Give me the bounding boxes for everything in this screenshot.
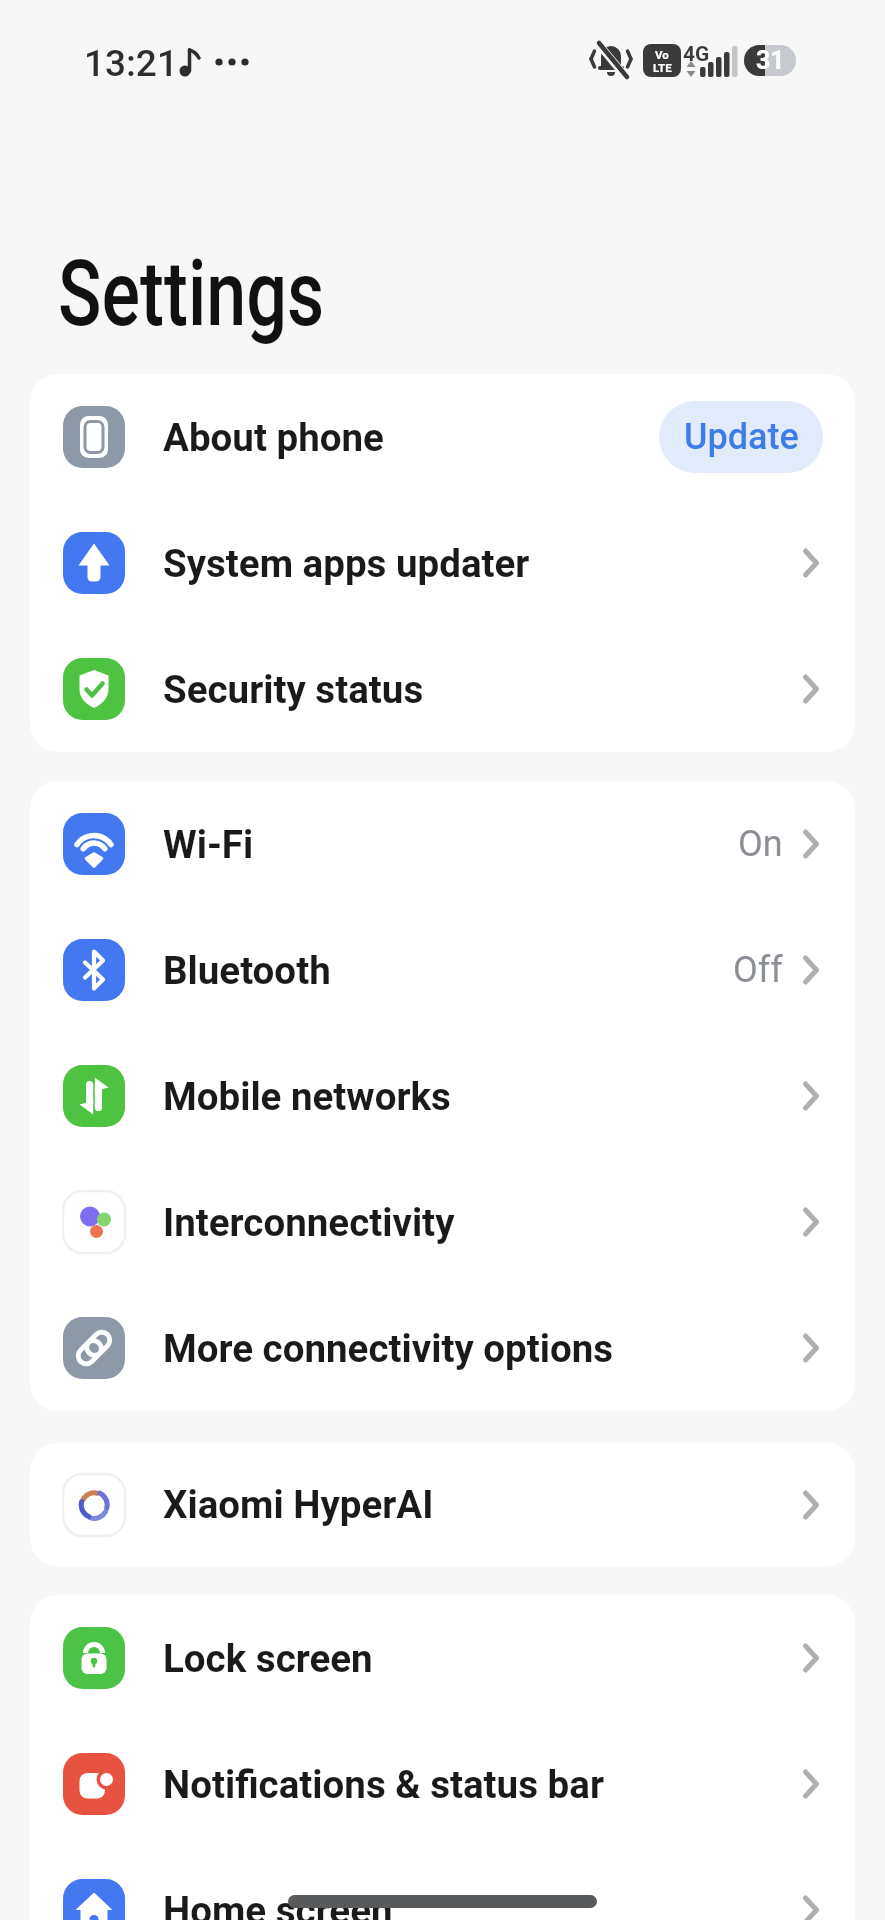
button[interactable]: Update [659, 401, 823, 473]
staticText: Xiaomi HyperAI [163, 1482, 434, 1527]
staticText: 4G [683, 42, 710, 67]
button[interactable]: Xiaomi HyperAI [30, 1443, 855, 1566]
staticText: On [738, 823, 783, 865]
staticText: Interconnectivity [163, 1200, 455, 1245]
staticText: LTE [653, 61, 672, 74]
staticText: Notifications & status bar [163, 1762, 604, 1807]
button[interactable]: About phone [30, 374, 855, 500]
staticText: More connectivity options [163, 1326, 614, 1371]
staticText: Vo [655, 48, 669, 61]
button[interactable]: Home screen [30, 1847, 855, 1920]
staticText: Off [733, 949, 783, 991]
staticText: Settings [58, 241, 324, 348]
staticText: Security status [163, 667, 424, 712]
button[interactable]: Bluetooth [30, 907, 855, 1033]
staticText: Lock screen [163, 1636, 373, 1681]
button[interactable]: Wi-Fi [30, 781, 855, 907]
button[interactable]: Mobile networks [30, 1033, 855, 1159]
button[interactable]: Interconnectivity [30, 1159, 855, 1285]
staticText: Update [684, 416, 799, 458]
staticText: 31 [756, 46, 785, 75]
staticText: System apps updater [163, 541, 530, 586]
staticText: 13:21 [84, 42, 178, 85]
button[interactable]: Lock screen [30, 1595, 855, 1721]
staticText: Mobile networks [163, 1074, 451, 1119]
staticText: Bluetooth [163, 948, 331, 993]
button[interactable]: System apps updater [30, 500, 855, 626]
staticText: Home screen [163, 1888, 393, 1920]
button[interactable]: More connectivity options [30, 1285, 855, 1411]
staticText: About phone [163, 415, 384, 460]
staticText: Wi-Fi [163, 822, 254, 867]
button[interactable]: Security status [30, 626, 855, 752]
button[interactable]: Notifications & status bar [30, 1721, 855, 1847]
